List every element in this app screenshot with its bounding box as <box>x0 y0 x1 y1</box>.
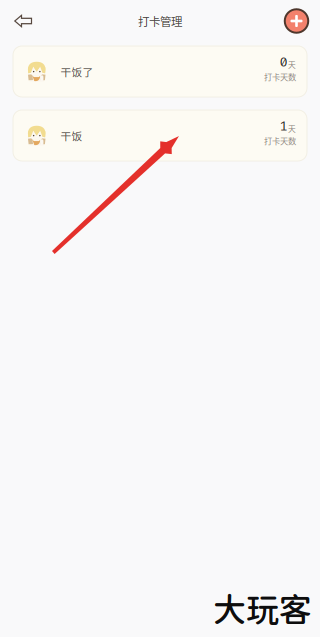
staticText: 干饭 <box>60 128 82 143</box>
staticText: 打卡天数 <box>264 71 296 83</box>
staticText: 干饭了 <box>60 64 93 79</box>
staticText: 打卡管理 <box>138 13 182 29</box>
staticText: 0 <box>279 54 287 71</box>
button[interactable]: Back <box>6 7 40 34</box>
button[interactable]: 干饭 <box>13 110 307 161</box>
button[interactable]: 干饭了 <box>13 46 307 97</box>
staticText: 1 <box>279 118 287 135</box>
staticText: 天 <box>288 123 296 134</box>
staticText: 打卡天数 <box>264 135 296 147</box>
staticText: 天 <box>288 59 296 70</box>
staticText: 大玩客 <box>213 590 312 629</box>
button[interactable]: Add habit <box>278 5 315 36</box>
